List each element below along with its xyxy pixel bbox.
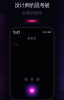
staticText: 9:41 (13, 29, 20, 35)
staticText: 设计师的思考被 (14, 2, 49, 9)
staticText: 今天 (13, 43, 19, 46)
staticText: 全新的创作 (22, 11, 42, 15)
staticText: 消息页 (27, 37, 36, 40)
